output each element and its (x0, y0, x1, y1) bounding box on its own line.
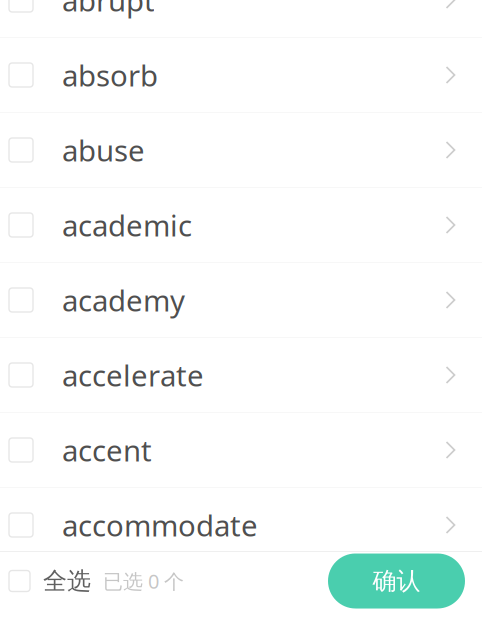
button[interactable]: absorb (0, 38, 482, 113)
staticText: academic (62, 205, 192, 244)
button[interactable]: abrupt (0, 0, 482, 38)
staticText: accommodate (62, 505, 258, 544)
staticText: academy (62, 280, 185, 319)
button[interactable]: 全选 (0, 552, 184, 610)
button[interactable]: 确认 (328, 553, 465, 608)
staticText: absorb (62, 55, 158, 94)
staticText: accelerate (62, 355, 204, 394)
button[interactable]: abuse (0, 113, 482, 188)
staticText: accent (62, 430, 152, 469)
button[interactable]: academy (0, 263, 482, 338)
staticText: 全选 (43, 566, 91, 596)
button[interactable]: accelerate (0, 338, 482, 413)
staticText: 已选 0 个 (103, 568, 184, 594)
staticText: abrupt (62, 0, 155, 19)
button[interactable]: academic (0, 188, 482, 263)
staticText: abuse (62, 130, 145, 169)
staticText: 确认 (372, 566, 420, 596)
button[interactable]: accent (0, 413, 482, 488)
button[interactable]: accommodate (0, 488, 482, 563)
